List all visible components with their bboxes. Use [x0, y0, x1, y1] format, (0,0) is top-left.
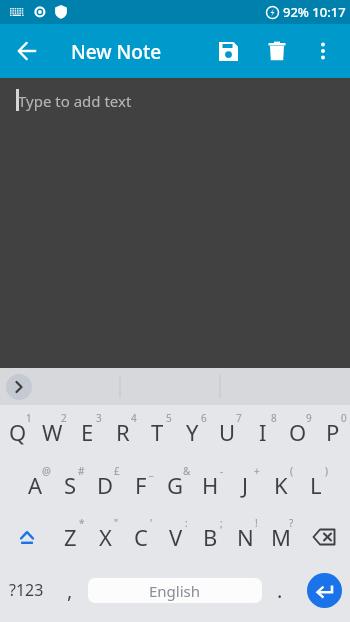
staticText: Type to add text [18, 91, 132, 111]
staticText: M [271, 522, 291, 552]
button[interactable]: N [228, 511, 263, 563]
staticText: 5 [166, 411, 172, 425]
staticText: ) [325, 464, 328, 478]
staticText: 8 [271, 411, 277, 425]
staticText: F [135, 470, 147, 500]
staticText: W [42, 417, 63, 447]
button[interactable]: Back [9, 33, 45, 69]
button[interactable]: Q [0, 405, 35, 459]
staticText: 92% 10:17 [283, 3, 346, 21]
staticText: 1 [26, 411, 32, 425]
button[interactable]: U [210, 405, 245, 459]
staticText: . [277, 577, 283, 604]
staticText: + [254, 464, 260, 478]
staticText: ? [289, 516, 294, 530]
staticText: _ [149, 464, 154, 478]
staticText: B [203, 522, 218, 552]
staticText: R [116, 417, 130, 447]
staticText: ! [255, 516, 258, 530]
staticText: Q [9, 417, 27, 447]
button[interactable]: ?123 [0, 563, 52, 617]
button[interactable]: P [315, 405, 350, 459]
staticText: C [134, 522, 148, 552]
staticText: ?123 [9, 579, 44, 601]
button[interactable]: Save [206, 29, 250, 73]
button[interactable]: G [158, 459, 193, 511]
button[interactable]: E [70, 405, 105, 459]
staticText: 4 [131, 411, 137, 425]
staticText: : [185, 516, 188, 530]
button[interactable]: S [53, 459, 88, 511]
staticText: N [237, 522, 254, 552]
button[interactable]: T [140, 405, 175, 459]
staticText: 9 [306, 411, 312, 425]
staticText: O [289, 417, 307, 447]
staticText: # [78, 464, 85, 478]
staticText: 7 [236, 411, 242, 425]
staticText: * [79, 516, 85, 530]
staticText: " [114, 516, 119, 530]
button[interactable]: A [18, 459, 53, 511]
button[interactable]: D [88, 459, 123, 511]
staticText: H [202, 470, 219, 500]
staticText: 2 [61, 411, 67, 425]
button[interactable]: H [193, 459, 228, 511]
staticText: - [220, 464, 224, 478]
staticText: P [326, 417, 340, 447]
staticText: X [99, 522, 112, 552]
button[interactable]: Shift [0, 511, 53, 563]
staticText: L [310, 470, 322, 500]
staticText: U [219, 417, 236, 447]
button[interactable]: Delete [255, 29, 299, 73]
staticText: K [274, 470, 288, 500]
staticText: S [64, 470, 77, 500]
button[interactable]: Z [53, 511, 88, 563]
button[interactable]: M [263, 511, 298, 563]
staticText: T [151, 417, 164, 447]
staticText: V [169, 522, 183, 552]
staticText: 6 [201, 411, 207, 425]
button[interactable]: Y [175, 405, 210, 459]
button[interactable]: Enter [298, 563, 350, 617]
staticText: @ [42, 464, 51, 478]
button[interactable]: Backspace [298, 511, 350, 563]
staticText: ( [290, 464, 293, 478]
staticText: Z [64, 522, 77, 552]
button[interactable]: K [263, 459, 298, 511]
staticText: A [28, 470, 43, 500]
button[interactable]: X [88, 511, 123, 563]
button[interactable]: I [245, 405, 280, 459]
button[interactable]: L [298, 459, 333, 511]
staticText: E [81, 417, 94, 447]
staticText: J [242, 470, 249, 500]
button[interactable]: English [88, 578, 262, 603]
button[interactable]: . [262, 563, 298, 617]
staticText: £ [114, 464, 120, 478]
staticText: ; [220, 516, 223, 530]
staticText: ' [150, 516, 153, 530]
button[interactable]: O [280, 405, 315, 459]
staticText: , [67, 577, 73, 604]
staticText: 0 [341, 411, 347, 425]
button[interactable]: , [52, 563, 88, 617]
button[interactable]: Expand suggestions [6, 374, 32, 400]
staticText: English [149, 581, 201, 601]
staticText: 3 [96, 411, 102, 425]
button[interactable]: F [123, 459, 158, 511]
staticText: G [167, 470, 184, 500]
staticText: New Note [71, 39, 162, 65]
staticText: D [97, 470, 114, 500]
button[interactable]: W [35, 405, 70, 459]
staticText: & [183, 464, 191, 478]
button[interactable]: C [123, 511, 158, 563]
staticText: I [259, 417, 267, 447]
staticText: Y [186, 417, 199, 447]
button[interactable]: More options [306, 34, 340, 68]
button[interactable]: V [158, 511, 193, 563]
button[interactable]: J [228, 459, 263, 511]
button[interactable]: R [105, 405, 140, 459]
button[interactable]: B [193, 511, 228, 563]
